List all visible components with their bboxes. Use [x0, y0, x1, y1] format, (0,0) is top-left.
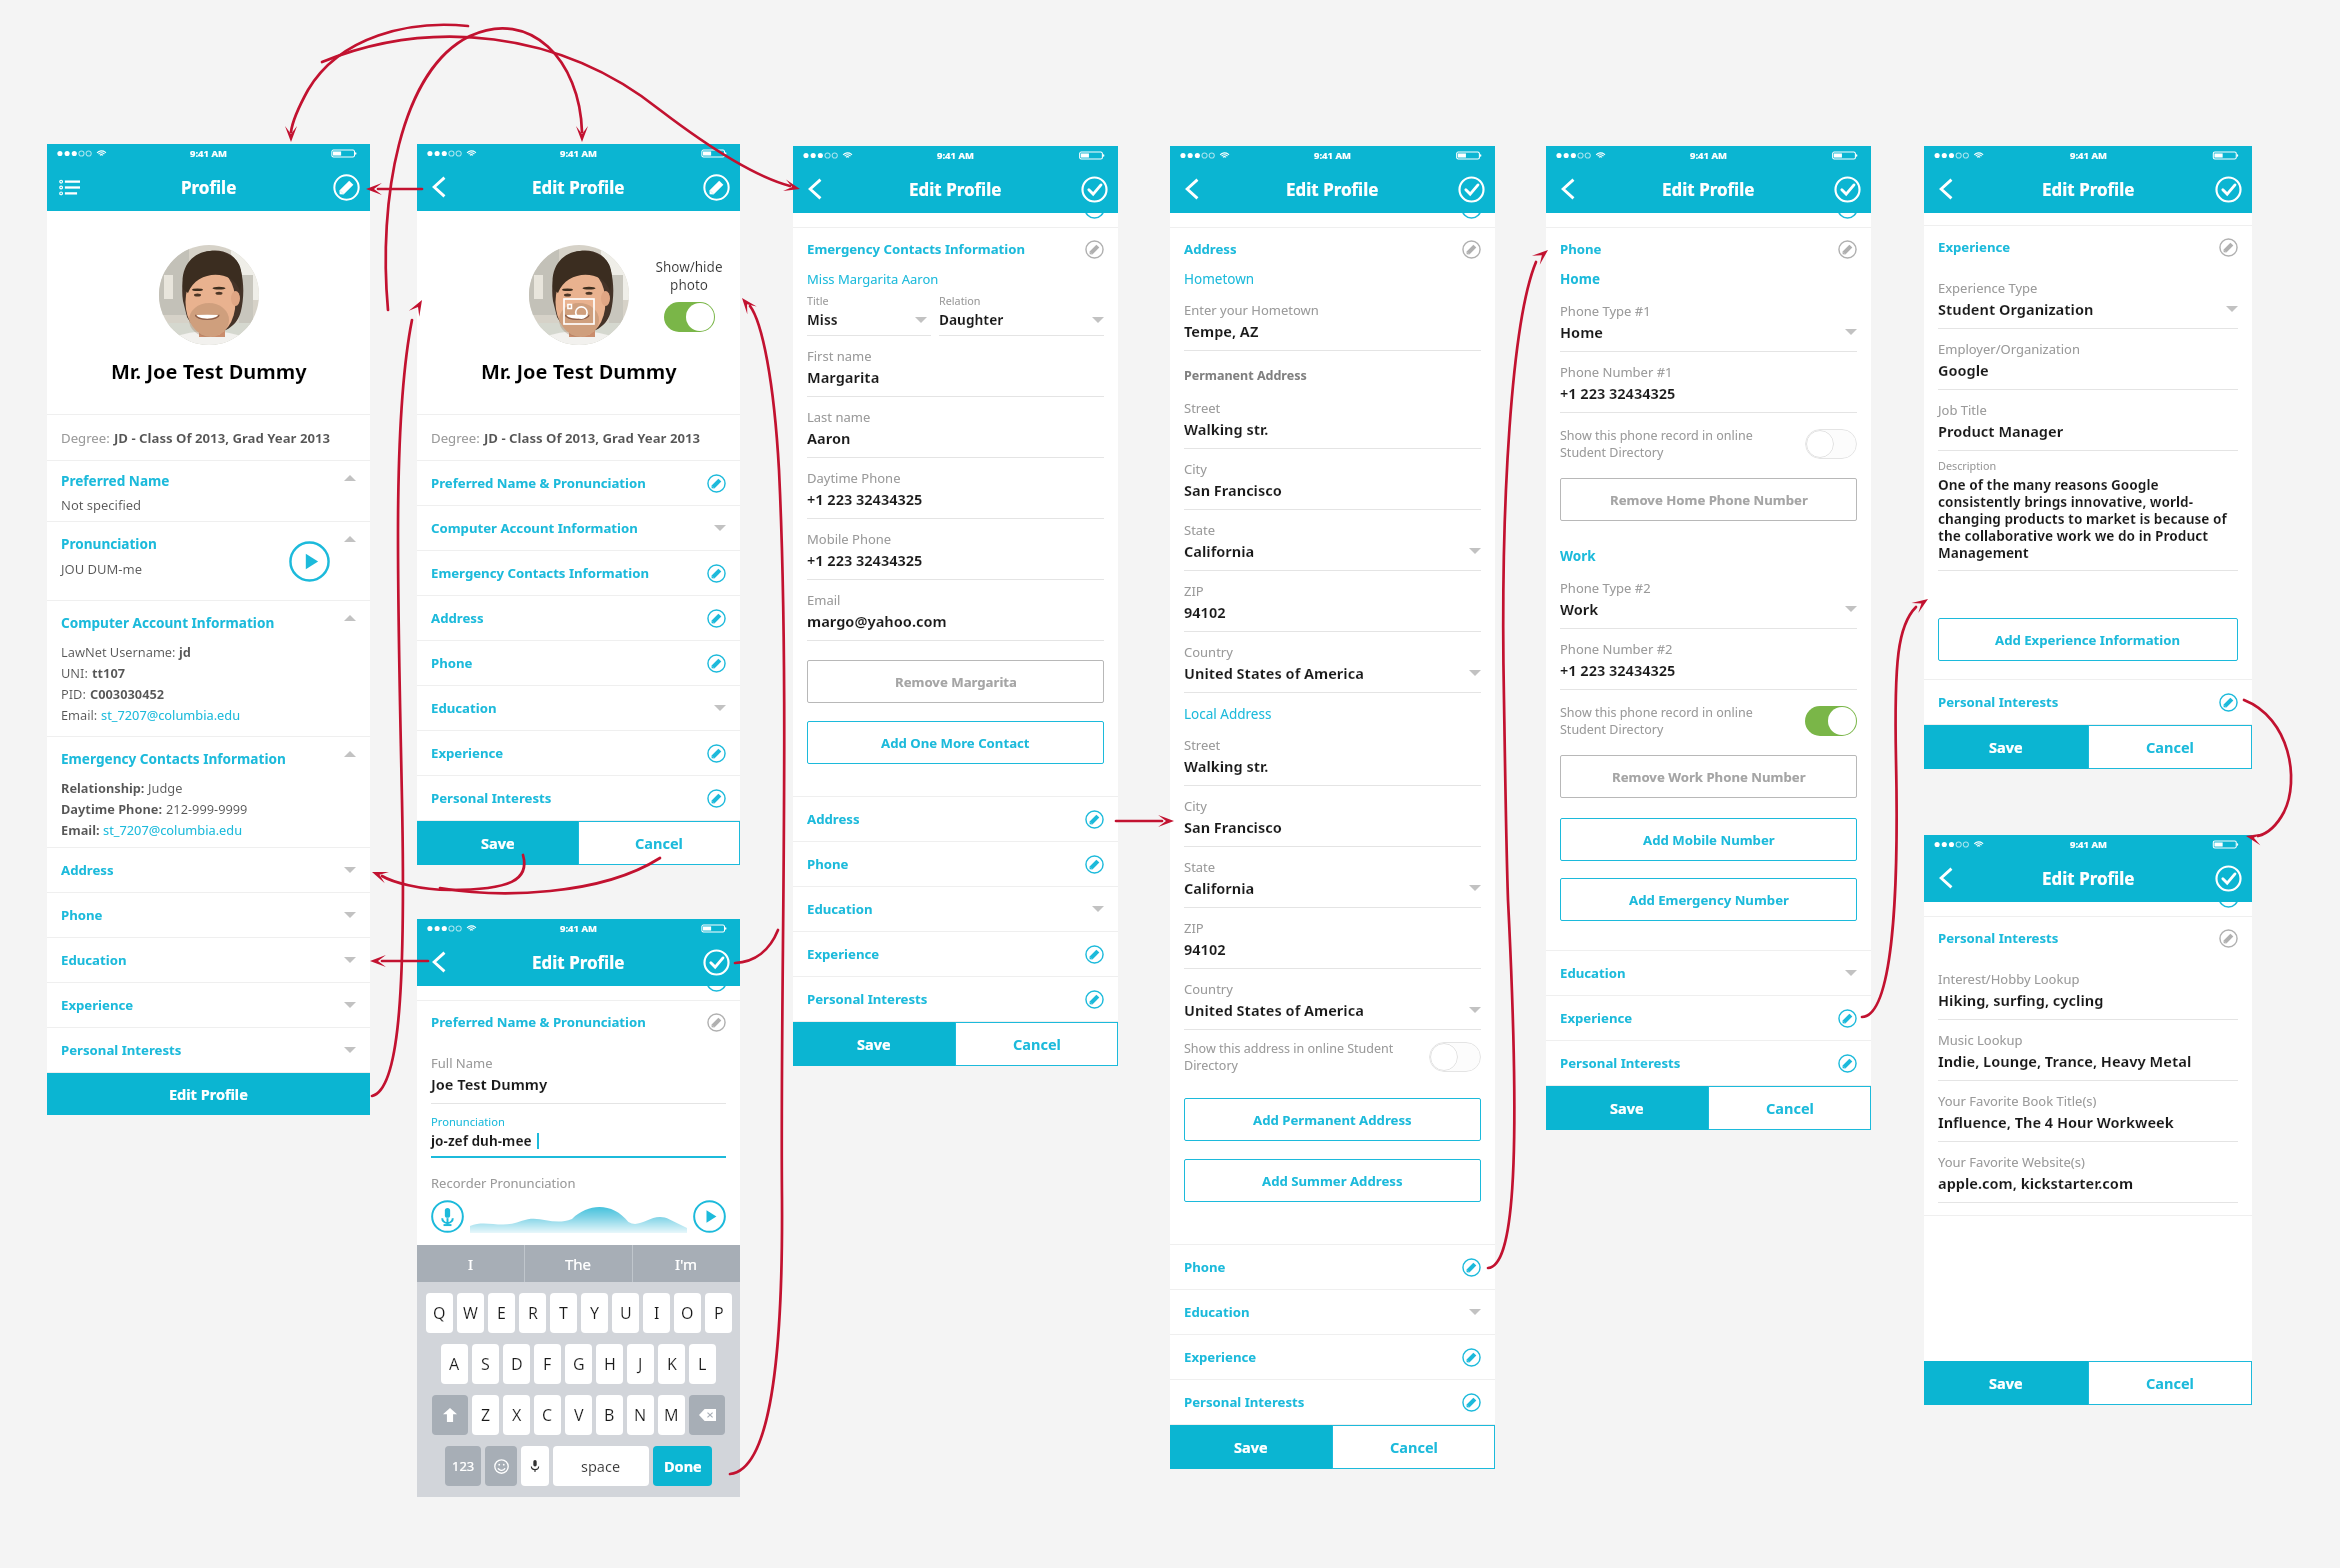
button[interactable]: Computer Account Information: [47, 601, 370, 736]
button[interactable]: Save: [1170, 1425, 1332, 1469]
button[interactable]: Save: [793, 1022, 955, 1066]
button[interactable]: City: [1170, 786, 1495, 847]
button[interactable]: Phone: [1546, 228, 1871, 270]
button[interactable]: Phone: [417, 641, 740, 685]
button[interactable]: Edit: [701, 172, 731, 202]
button[interactable]: Interest/Hobby Lookup: [1924, 959, 2252, 1020]
button[interactable]: Experience: [47, 983, 370, 1027]
button[interactable]: Emergency Contacts Information: [417, 551, 740, 595]
button[interactable]: Y: [581, 1293, 608, 1333]
button[interactable]: State: [1170, 847, 1495, 908]
button[interactable]: Done: [1832, 174, 1862, 204]
button[interactable]: Phone Type #2: [1546, 568, 1871, 629]
button[interactable]: G: [565, 1344, 592, 1384]
button[interactable]: Street: [1170, 388, 1495, 449]
button[interactable]: F: [534, 1344, 561, 1384]
button[interactable]: Full Name: [417, 1043, 740, 1104]
button[interactable]: Add Emergency Number: [1560, 878, 1857, 921]
button[interactable]: Show this phone record in online: [1546, 704, 1871, 738]
button[interactable]: Dictate: [521, 1446, 549, 1486]
button[interactable]: Back: [1553, 174, 1583, 204]
button[interactable]: Back: [800, 174, 830, 204]
button[interactable]: Cancel: [2088, 1361, 2252, 1405]
button[interactable]: Address: [1170, 228, 1495, 270]
button[interactable]: S: [472, 1344, 499, 1384]
button[interactable]: Education: [47, 938, 370, 982]
button[interactable]: Phone Number #2: [1546, 629, 1871, 690]
button[interactable]: Experience: [1170, 1335, 1495, 1379]
button[interactable]: Address: [417, 596, 740, 640]
button[interactable]: Phone: [793, 842, 1118, 886]
button[interactable]: Employer/Organization: [1924, 329, 2252, 390]
button[interactable]: Done: [701, 947, 731, 977]
button[interactable]: Back: [1177, 174, 1207, 204]
button[interactable]: Address: [793, 797, 1118, 841]
button[interactable]: 123: [445, 1446, 481, 1486]
button[interactable]: Add One More Contact: [807, 721, 1104, 764]
button[interactable]: Save: [1924, 1361, 2088, 1405]
button[interactable]: E: [488, 1293, 515, 1333]
button[interactable]: Toggle: [1805, 706, 1857, 736]
button[interactable]: Back: [1931, 174, 1961, 204]
button[interactable]: L: [689, 1344, 716, 1384]
button[interactable]: Daytime Phone: [793, 458, 1118, 519]
button[interactable]: W: [457, 1293, 484, 1333]
button[interactable]: R: [519, 1293, 546, 1333]
button[interactable]: Emoji: [485, 1446, 517, 1486]
button[interactable]: Back: [424, 172, 454, 202]
button[interactable]: A: [441, 1344, 468, 1384]
button[interactable]: I: [417, 1245, 524, 1282]
button[interactable]: Cancel: [1708, 1086, 1871, 1130]
button[interactable]: Add Experience Information: [1938, 618, 2238, 661]
button[interactable]: D: [503, 1344, 530, 1384]
button[interactable]: Shift: [432, 1395, 468, 1435]
button[interactable]: Computer Account Information: [417, 506, 740, 550]
button[interactable]: Z: [472, 1395, 499, 1435]
button[interactable]: Pronunciation: [47, 522, 370, 600]
button[interactable]: Done: [1456, 174, 1486, 204]
button[interactable]: Preferred Name & Pronunciation: [417, 461, 740, 505]
button[interactable]: Experience: [1546, 996, 1871, 1040]
button[interactable]: ZIP: [1170, 571, 1495, 632]
button[interactable]: O: [674, 1293, 701, 1333]
button[interactable]: Add Summer Address: [1184, 1159, 1481, 1202]
button[interactable]: Cancel: [1332, 1425, 1495, 1469]
button[interactable]: Save: [417, 821, 578, 865]
button[interactable]: Save: [1546, 1086, 1708, 1130]
button[interactable]: Your Favorite Book Title(s): [1924, 1081, 2252, 1142]
button[interactable]: Your Favorite Website(s): [1924, 1142, 2252, 1203]
button[interactable]: Personal Interests: [1546, 1041, 1871, 1085]
button[interactable]: Phone Type #1: [1546, 291, 1871, 352]
button[interactable]: Edit Profile: [47, 1073, 370, 1115]
button[interactable]: Education: [1170, 1290, 1495, 1334]
button[interactable]: I: [643, 1293, 670, 1333]
button[interactable]: Education: [417, 686, 740, 730]
button[interactable]: Show this address in online Student: [1170, 1040, 1495, 1074]
button[interactable]: P: [705, 1293, 732, 1333]
button[interactable]: K: [658, 1344, 685, 1384]
button[interactable]: City: [1170, 449, 1495, 510]
button[interactable]: Add Mobile Number: [1560, 818, 1857, 861]
button[interactable]: Personal Interests: [47, 1028, 370, 1072]
button[interactable]: Remove Margarita: [807, 660, 1104, 703]
button[interactable]: Street: [1170, 725, 1495, 786]
button[interactable]: Address: [47, 848, 370, 892]
button[interactable]: Remove Home Phone Number: [1560, 478, 1857, 521]
button[interactable]: Done: [1079, 174, 1109, 204]
button[interactable]: Cancel: [2088, 725, 2252, 769]
button[interactable]: X: [503, 1395, 530, 1435]
button[interactable]: Personal Interests: [793, 977, 1118, 1021]
button[interactable]: B: [596, 1395, 623, 1435]
button[interactable]: Menu: [54, 172, 84, 202]
button[interactable]: Add Permanent Address: [1184, 1098, 1481, 1141]
button[interactable]: Education: [1546, 951, 1871, 995]
button[interactable]: Emergency Contacts Information: [793, 228, 1118, 270]
button[interactable]: T: [550, 1293, 577, 1333]
button[interactable]: Education: [793, 887, 1118, 931]
button[interactable]: Mobile Phone: [793, 519, 1118, 580]
button[interactable]: J: [627, 1344, 654, 1384]
button[interactable]: Music Lookup: [1924, 1020, 2252, 1081]
button[interactable]: Experience: [793, 932, 1118, 976]
button[interactable]: Back: [424, 947, 454, 977]
button[interactable]: Toggle: [664, 302, 715, 332]
